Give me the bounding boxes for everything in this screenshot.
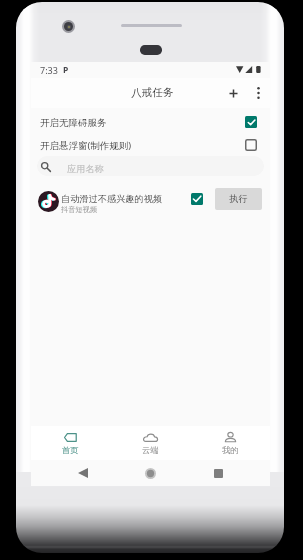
staticText: 执行 xyxy=(229,193,248,205)
button[interactable]: Add xyxy=(220,80,246,106)
button[interactable]: Home xyxy=(116,460,184,486)
staticText: 首页 xyxy=(62,445,79,455)
button[interactable]: Recents xyxy=(184,460,252,486)
staticText: 八戒任务 xyxy=(131,86,174,99)
staticText: 7:33 xyxy=(40,64,58,76)
staticText: 云端 xyxy=(142,445,159,455)
button[interactable]: 首页 xyxy=(31,426,110,460)
button[interactable]: More options xyxy=(246,81,270,105)
staticText: 我的 xyxy=(222,445,239,455)
staticText: 开启无障碍服务 xyxy=(40,117,107,129)
staticText: 应用名称 xyxy=(67,163,104,175)
button[interactable]: Back xyxy=(49,460,116,486)
button[interactable]: 云端 xyxy=(110,426,190,460)
button[interactable]: 开启悬浮窗(制作规则) xyxy=(31,134,270,157)
button[interactable]: 执行 xyxy=(215,188,262,210)
button[interactable]: 自动滑过不感兴趣的视频 xyxy=(31,186,270,216)
staticText: P xyxy=(63,64,69,76)
staticText: 开启悬浮窗(制作规则) xyxy=(40,139,132,152)
button[interactable]: 应用名称 xyxy=(37,156,264,176)
staticText: 抖音短视频 xyxy=(61,205,97,214)
button[interactable]: 我的 xyxy=(190,426,270,460)
staticText: 自动滑过不感兴趣的视频 xyxy=(61,193,163,205)
button[interactable]: 开启无障碍服务 xyxy=(31,111,270,134)
